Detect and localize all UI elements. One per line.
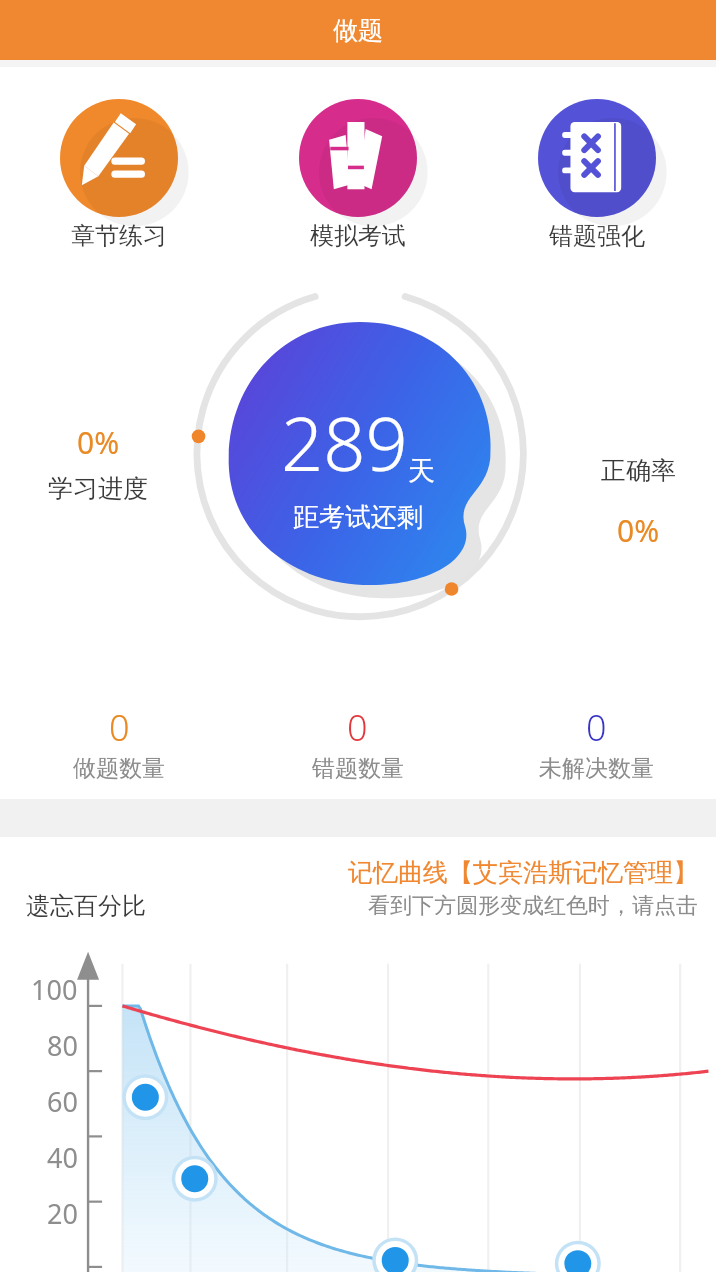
staticText: 100 [31,971,78,1008]
button[interactable]: 记忆曲线【艾宾浩斯记忆管理】 [348,857,698,920]
staticText: 0% [77,422,120,463]
staticText: 章节练习 [71,221,167,251]
button[interactable]: 模拟考试 [238,99,477,251]
staticText: 错题数量 [312,754,404,783]
staticText: 289 [281,392,408,493]
staticText: 0 [109,703,130,752]
staticText: 错题强化 [549,221,645,251]
staticText: 20 [47,1195,78,1232]
staticText: 天 [408,454,435,488]
staticText: 80 [47,1027,78,1064]
button[interactable]: 0% [48,422,148,504]
button[interactable]: 章节练习 [0,99,238,251]
staticText: 记忆曲线【艾宾浩斯记忆管理】 [348,857,698,888]
staticText: 60 [47,1083,78,1120]
staticText: 做题 [333,15,383,46]
staticText: 做题数量 [73,754,165,783]
staticText: 看到下方圆形变成红色时，请点击 [368,892,698,920]
staticText: 距考试还剩 [293,501,423,534]
staticText: 40 [47,1139,78,1176]
button[interactable]: 0 [0,703,238,783]
staticText: 0% [617,510,660,551]
staticText: 学习进度 [48,473,148,504]
button[interactable]: 做题 [0,0,716,60]
staticText: 未解决数量 [539,754,654,783]
staticText: 0 [586,703,607,752]
button[interactable]: 正确率 [601,455,676,551]
staticText: 模拟考试 [310,221,406,251]
button[interactable]: 错题强化 [477,99,716,251]
button[interactable]: 0 [477,703,716,783]
staticText: 遗忘百分比 [26,891,146,921]
staticText: 正确率 [601,455,676,486]
button[interactable]: 0 [238,703,477,783]
staticText: 0 [347,703,368,752]
